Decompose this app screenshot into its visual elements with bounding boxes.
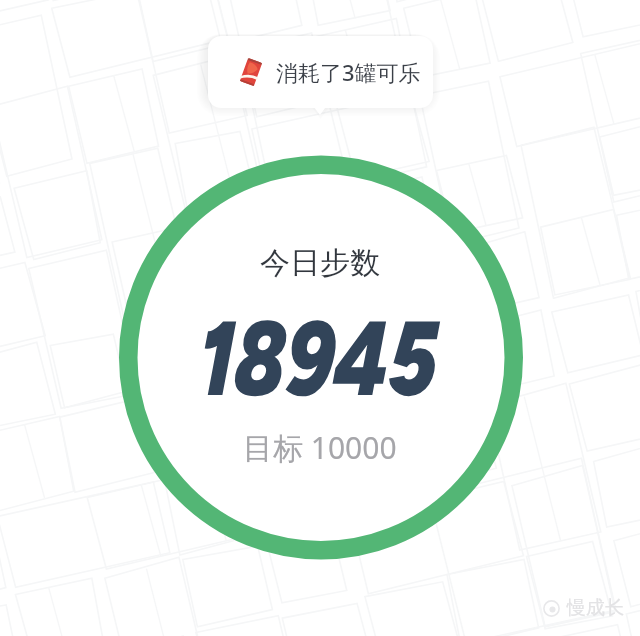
other: Logo — [542, 599, 561, 618]
staticText: 消耗了3罐可乐 — [276, 57, 421, 87]
other: Cola can — [236, 57, 266, 87]
button[interactable]: 今日步数 18945 — [119, 155, 523, 559]
staticText: 今日步数 — [260, 244, 380, 282]
staticText: 目标 10000 — [243, 427, 397, 468]
button[interactable]: Cola can — [208, 36, 433, 108]
staticText: 慢成长 — [567, 596, 624, 620]
